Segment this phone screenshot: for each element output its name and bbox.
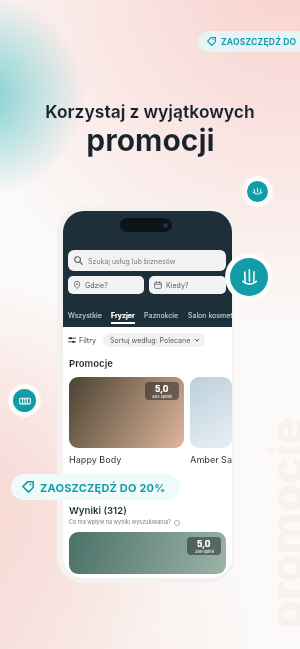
button[interactable]: Salon kosmetyczny: [188, 311, 232, 324]
button[interactable]: Amber Salon: [190, 377, 232, 465]
staticText: Wyniki (312): [69, 505, 127, 516]
staticText: 289 opinii: [195, 549, 214, 554]
staticText: Paznokcie: [144, 311, 179, 319]
button[interactable]: 5,0: [69, 377, 184, 465]
staticText: Filtry: [79, 336, 96, 344]
button[interactable]: Sortuj według: Polecane: [103, 333, 205, 347]
button[interactable]: Rzęsy: [242, 176, 273, 207]
staticText: 483 opinie: [152, 394, 173, 399]
button[interactable]: Szukaj usług lub biznesów: [68, 250, 226, 271]
staticText: Korzystaj z wyjątkowych: [45, 101, 255, 122]
button[interactable]: ZAOSZCZĘDŹ DO 20%: [11, 474, 180, 500]
button[interactable]: Makijaż: [8, 384, 41, 417]
button[interactable]: Gdzie?: [68, 276, 144, 294]
staticText: Gdzie?: [85, 281, 108, 289]
staticText: Co ma wpływ na wyniki wyszukiwania?: [69, 519, 171, 526]
staticText: Fryzjer: [111, 311, 135, 319]
staticText: 5,0: [155, 384, 169, 394]
staticText: ZAOSZCZĘDŹ DO 20%: [40, 481, 166, 494]
staticText: Szukaj usług lub biznesów: [88, 257, 176, 265]
button[interactable]: Kiedy?: [149, 276, 226, 294]
button[interactable]: Paznokcie: [144, 311, 179, 324]
button[interactable]: Filtry: [68, 336, 96, 344]
button[interactable]: Paznokcie: [225, 253, 273, 301]
staticText: promocje: [258, 417, 300, 629]
staticText: 5,0: [197, 539, 211, 549]
staticText: Salon kosmetyczny: [188, 311, 232, 319]
button[interactable]: Wszystkie: [68, 311, 102, 324]
staticText: Wszystkie: [68, 311, 102, 319]
staticText: promocji: [86, 122, 215, 158]
staticText: ZAOSZCZĘDŹ DO: [221, 37, 297, 47]
button[interactable]: ZAOSZCZĘDŹ DO: [198, 31, 300, 52]
staticText: Amber Salon: [190, 454, 232, 465]
staticText: Promocje: [69, 358, 113, 369]
staticText: Happy Body: [69, 454, 122, 465]
button[interactable]: Fryzjer: [111, 311, 135, 324]
staticText: Sortuj według: Polecane: [110, 336, 191, 344]
staticText: Kiedy?: [166, 281, 189, 289]
